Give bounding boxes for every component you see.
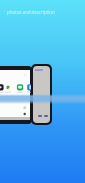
button[interactable] [0, 66, 32, 124]
staticText: photos and description [7, 9, 55, 15]
button[interactable] [31, 64, 52, 125]
